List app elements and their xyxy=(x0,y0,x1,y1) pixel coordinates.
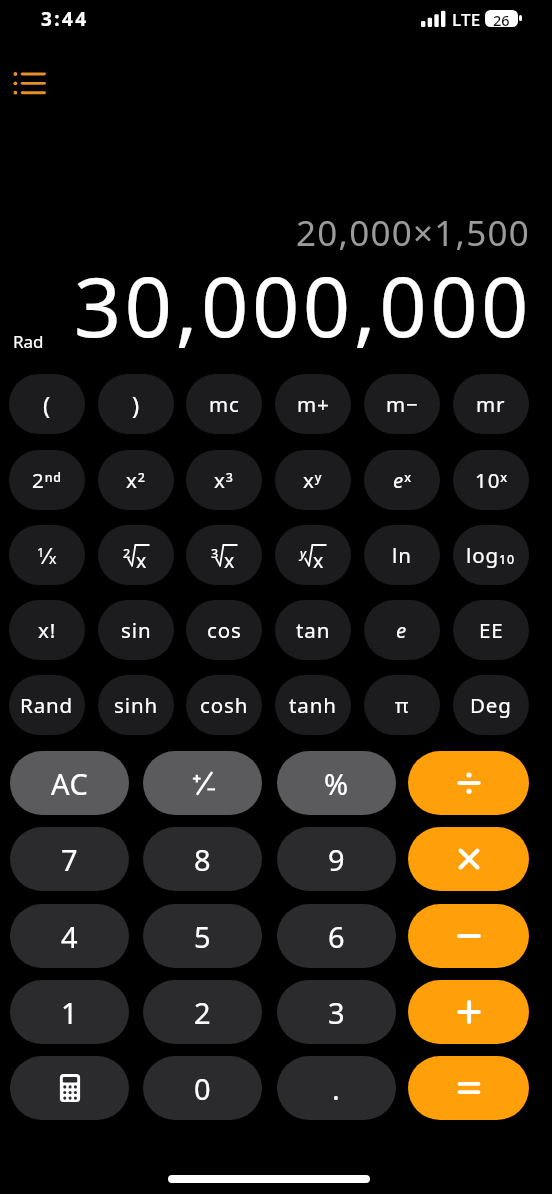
button[interactable]: π xyxy=(364,675,440,735)
button[interactable]: . xyxy=(277,1056,396,1120)
button[interactable]: log10 xyxy=(453,525,529,585)
staticText: LTE xyxy=(452,8,481,31)
staticText: cos xyxy=(207,616,242,644)
staticText: x xyxy=(136,547,147,570)
staticText: 10x xyxy=(475,466,508,494)
staticText: mc xyxy=(209,390,240,418)
button[interactable]: 2 xyxy=(98,525,174,585)
button[interactable]: mc xyxy=(186,374,262,434)
staticText: 26 xyxy=(493,10,510,27)
button[interactable]: tanh xyxy=(275,675,351,735)
staticText: AC xyxy=(51,764,89,803)
button[interactable]: ln xyxy=(364,525,440,585)
staticText: x3 xyxy=(214,466,234,494)
button[interactable]: Equals xyxy=(408,1056,529,1120)
button[interactable]: 3 xyxy=(277,980,396,1044)
button[interactable]: e xyxy=(364,600,440,660)
button[interactable]: EE xyxy=(453,600,529,660)
button[interactable]: cosh xyxy=(186,675,262,735)
staticText: 7 xyxy=(61,840,79,879)
staticText: y xyxy=(300,545,307,562)
button[interactable]: m+ xyxy=(275,374,351,434)
button[interactable]: ) xyxy=(98,374,174,434)
staticText: Rand xyxy=(20,691,74,719)
staticText: tanh xyxy=(289,691,337,719)
staticText: cosh xyxy=(200,691,249,719)
button[interactable]: 3 xyxy=(186,525,262,585)
button[interactable]: 2 xyxy=(143,980,262,1044)
staticText: mr xyxy=(476,390,506,418)
staticText: xy xyxy=(303,466,323,494)
button[interactable]: x2 xyxy=(98,450,174,510)
button[interactable]: y xyxy=(275,525,351,585)
button[interactable]: mr xyxy=(453,374,529,434)
staticText: 4 xyxy=(61,917,79,956)
button[interactable]: 7 xyxy=(10,827,129,891)
button[interactable]: 9 xyxy=(277,827,396,891)
button[interactable]: Deg xyxy=(453,675,529,735)
staticText: sin xyxy=(121,616,152,644)
button[interactable]: Multiply xyxy=(408,827,529,891)
staticText: x2 xyxy=(126,466,146,494)
staticText: Rad xyxy=(13,330,44,353)
staticText: ex xyxy=(393,466,412,494)
button[interactable]: Add xyxy=(408,980,529,1044)
staticText: log10 xyxy=(466,541,516,569)
staticText: 3 xyxy=(211,545,219,562)
button[interactable]: 1⁄x xyxy=(9,525,85,585)
staticText: . xyxy=(332,1069,341,1108)
staticText: 2nd xyxy=(32,466,63,494)
button[interactable]: Plus minus xyxy=(143,751,262,815)
staticText: 8 xyxy=(194,840,212,879)
button[interactable]: History xyxy=(5,59,53,107)
button[interactable]: x! xyxy=(9,600,85,660)
button[interactable]: sin xyxy=(98,600,174,660)
button[interactable]: 10x xyxy=(453,450,529,510)
staticText: 5 xyxy=(194,917,212,956)
staticText: π xyxy=(395,691,410,719)
staticText: 3:44 xyxy=(41,6,89,32)
button[interactable]: xy xyxy=(275,450,351,510)
button[interactable]: Calculator xyxy=(10,1056,129,1120)
button[interactable]: m− xyxy=(364,374,440,434)
staticText: x! xyxy=(38,616,57,644)
staticText: m+ xyxy=(297,390,330,418)
staticText: m− xyxy=(386,390,419,418)
button[interactable]: 5 xyxy=(143,904,262,968)
staticText: ln xyxy=(392,541,412,569)
staticText: % xyxy=(324,764,349,803)
button[interactable]: Divide xyxy=(408,751,529,815)
staticText: 1 xyxy=(61,993,79,1032)
button[interactable]: % xyxy=(277,751,396,815)
button[interactable]: AC xyxy=(10,751,129,815)
button[interactable]: ex xyxy=(364,450,440,510)
button[interactable]: 6 xyxy=(277,904,396,968)
button[interactable]: sinh xyxy=(98,675,174,735)
button[interactable]: Subtract xyxy=(408,904,529,968)
staticText: x xyxy=(313,547,324,570)
button[interactable]: x3 xyxy=(186,450,262,510)
staticText: x xyxy=(224,547,235,570)
button[interactable]: 2nd xyxy=(9,450,85,510)
staticText: EE xyxy=(479,616,504,644)
staticText: 0 xyxy=(194,1069,212,1108)
button[interactable]: 0 xyxy=(143,1056,262,1120)
staticText: 3 xyxy=(328,993,346,1032)
staticText: ) xyxy=(132,388,141,421)
button[interactable]: tan xyxy=(275,600,351,660)
staticText: ( xyxy=(43,388,52,421)
staticText: 20,000×1,500 xyxy=(0,209,530,257)
button[interactable]: 1 xyxy=(10,980,129,1044)
staticText: tan xyxy=(296,616,331,644)
staticText: e xyxy=(396,616,408,644)
staticText: 30,000,000 xyxy=(0,248,532,361)
staticText: 2 xyxy=(123,545,131,562)
button[interactable]: 8 xyxy=(143,827,262,891)
staticText: 1⁄x xyxy=(37,540,58,570)
button[interactable]: cos xyxy=(186,600,262,660)
button[interactable]: Rand xyxy=(9,675,85,735)
button[interactable]: 4 xyxy=(10,904,129,968)
staticText: 9 xyxy=(328,840,346,879)
staticText: 2 xyxy=(194,993,212,1032)
button[interactable]: ( xyxy=(9,374,85,434)
